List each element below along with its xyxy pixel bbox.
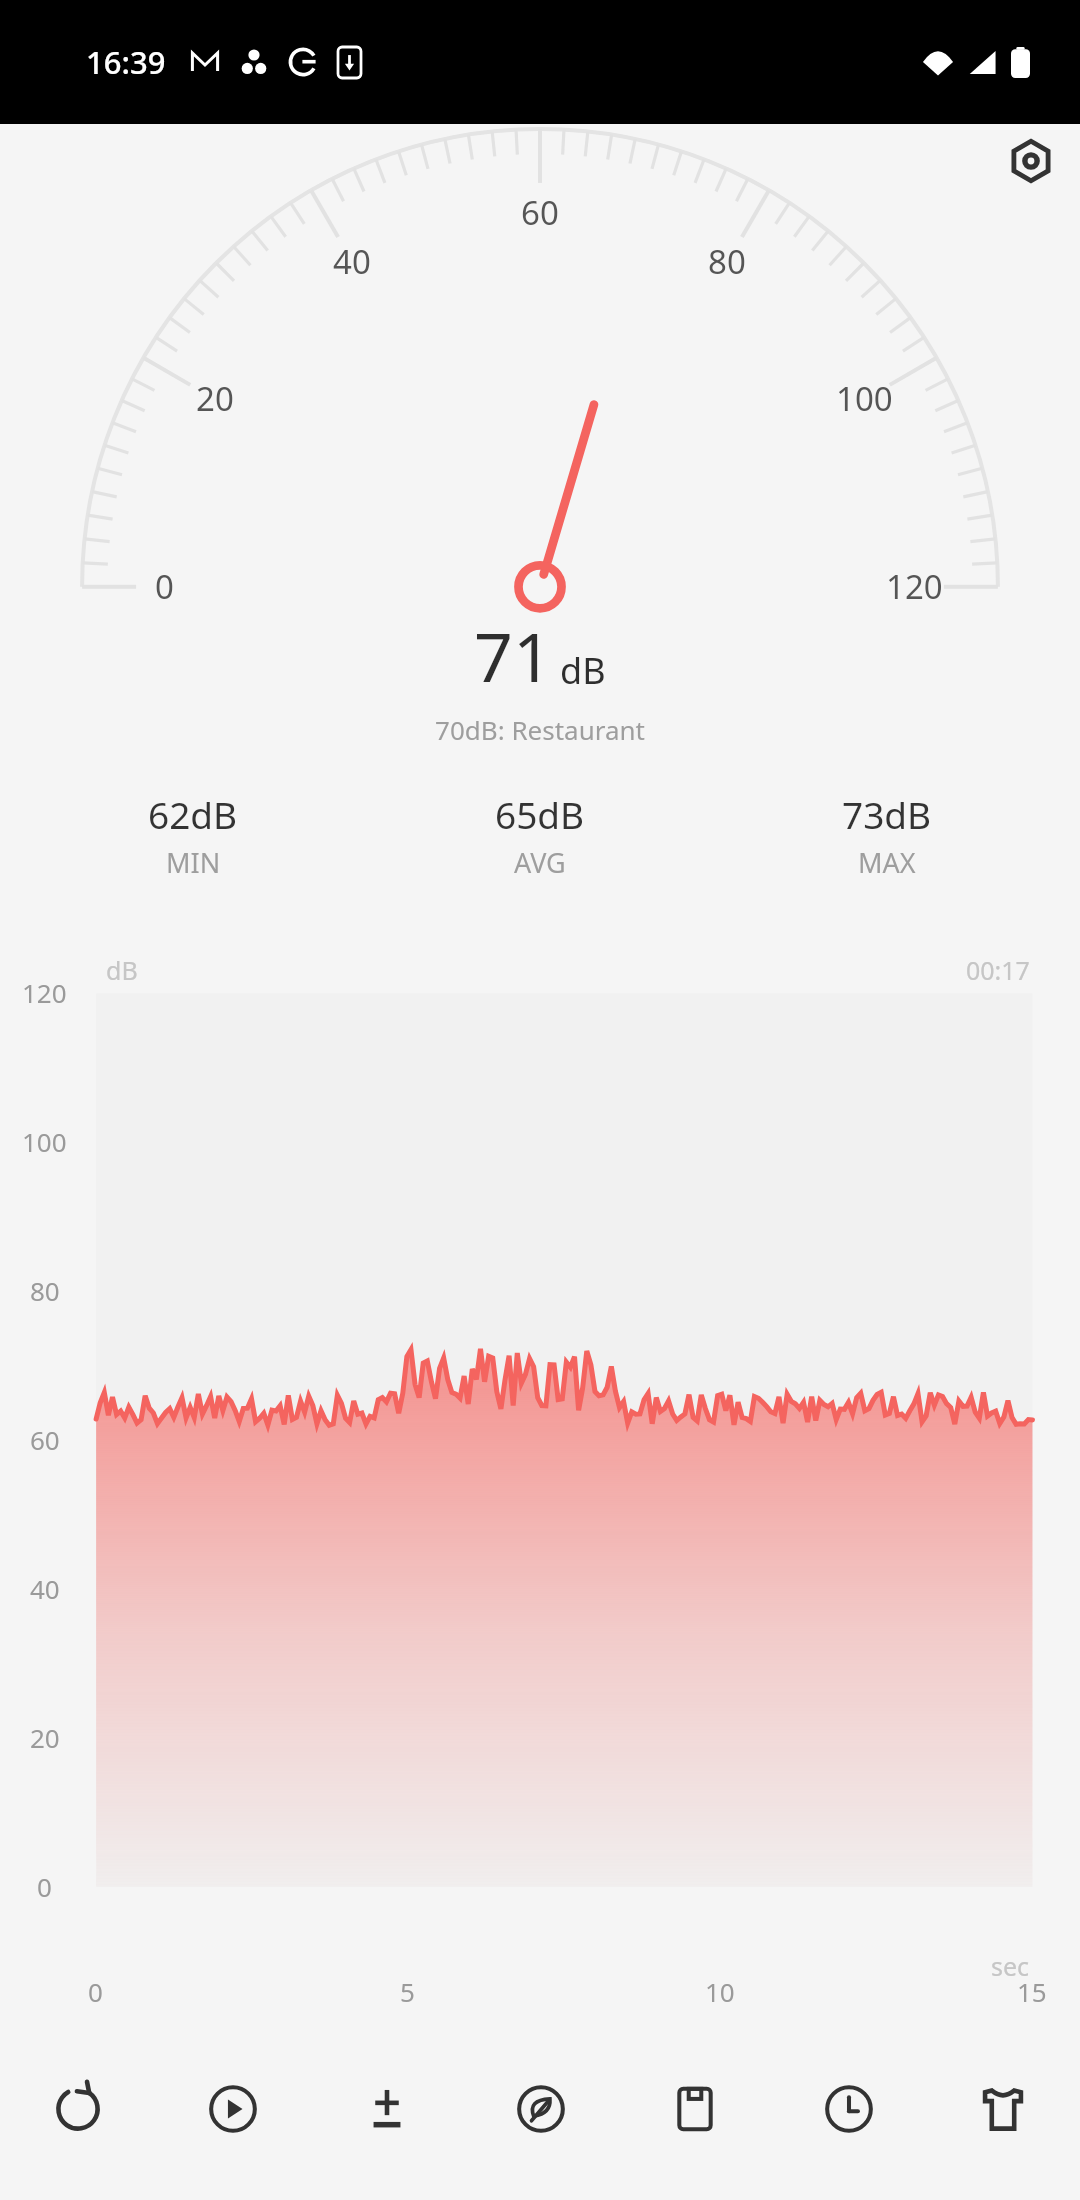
staticText: 120 bbox=[886, 564, 943, 609]
staticText: 20 bbox=[30, 1720, 60, 1755]
button[interactable]: History bbox=[772, 2055, 926, 2200]
button[interactable]: 65dB bbox=[366, 789, 713, 881]
button[interactable]: Settings bbox=[1004, 134, 1058, 188]
staticText: 16:39 bbox=[86, 41, 166, 83]
button[interactable]: Calibrate bbox=[310, 2055, 464, 2200]
staticText: 20 bbox=[196, 376, 234, 421]
staticText: 70dB: Restaurant bbox=[0, 712, 1080, 747]
staticText: AVG bbox=[514, 844, 566, 881]
staticText: MIN bbox=[166, 844, 221, 881]
staticText: MAX bbox=[858, 844, 916, 881]
staticText: 62dB bbox=[148, 789, 238, 839]
staticText: 60 bbox=[30, 1422, 60, 1457]
staticText: dB bbox=[560, 646, 606, 695]
button[interactable]: 73dB bbox=[713, 789, 1060, 881]
staticText: 100 bbox=[22, 1124, 67, 1159]
button[interactable]: Save bbox=[618, 2055, 772, 2200]
staticText: sec bbox=[991, 1949, 1030, 1983]
staticText: 5 bbox=[400, 1974, 415, 2009]
staticText: dB bbox=[106, 953, 138, 987]
staticText: 120 bbox=[22, 975, 67, 1010]
staticText: 0 bbox=[155, 564, 174, 609]
staticText: 15 bbox=[1017, 1974, 1047, 2009]
button[interactable]: 62dB bbox=[20, 789, 366, 881]
staticText: 60 bbox=[521, 190, 559, 235]
button[interactable]: Eco mode bbox=[464, 2055, 618, 2200]
staticText: 80 bbox=[30, 1273, 60, 1308]
button[interactable]: Play bbox=[155, 2055, 310, 2200]
staticText: 00:17 bbox=[966, 953, 1030, 987]
staticText: 40 bbox=[30, 1571, 60, 1606]
button[interactable]: Theme bbox=[926, 2055, 1080, 2200]
staticText: 80 bbox=[708, 239, 746, 284]
staticText: 71 bbox=[474, 609, 552, 702]
staticText: 73dB bbox=[842, 789, 932, 839]
staticText: 40 bbox=[333, 239, 371, 284]
staticText: 100 bbox=[836, 376, 893, 421]
staticText: 65dB bbox=[495, 789, 585, 839]
staticText: 10 bbox=[705, 1974, 735, 2009]
staticText: 0 bbox=[88, 1974, 103, 2009]
button[interactable]: Reset bbox=[0, 2055, 155, 2200]
staticText: 0 bbox=[37, 1869, 52, 1904]
